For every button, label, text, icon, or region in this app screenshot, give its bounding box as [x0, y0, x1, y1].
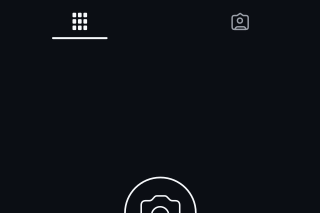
button[interactable]: Photo grid	[0, 0, 160, 42]
button[interactable]: Take photo	[124, 177, 197, 213]
button[interactable]: Tagged	[160, 0, 320, 42]
